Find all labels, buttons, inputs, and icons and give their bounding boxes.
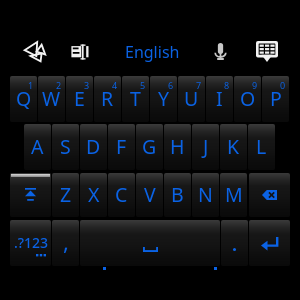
button[interactable]: B xyxy=(164,173,191,217)
staticText: 8 xyxy=(224,79,230,91)
button[interactable]: A xyxy=(24,124,51,170)
staticText: , xyxy=(63,226,69,256)
staticText: 1 xyxy=(28,79,34,91)
button[interactable]: E xyxy=(66,76,93,122)
button[interactable] xyxy=(221,220,248,266)
button[interactable]: W xyxy=(38,76,65,122)
staticText: Y xyxy=(158,85,170,112)
staticText: 3 xyxy=(84,79,90,91)
button[interactable]: C xyxy=(108,173,135,217)
staticText: L xyxy=(256,133,267,160)
staticText: 0 xyxy=(280,79,286,91)
button[interactable]: F xyxy=(108,124,135,170)
button[interactable]: I xyxy=(206,76,233,122)
staticText: O xyxy=(240,85,256,112)
staticText: 9 xyxy=(252,79,258,91)
button[interactable]: D xyxy=(80,124,107,170)
staticText: 6 xyxy=(168,79,174,91)
button[interactable]: J xyxy=(192,124,219,170)
staticText: H xyxy=(170,133,185,160)
staticText: X xyxy=(88,181,100,208)
staticText: V xyxy=(144,181,156,208)
button[interactable]: L xyxy=(248,124,275,170)
button[interactable]: , xyxy=(52,220,79,266)
button[interactable]: N xyxy=(192,173,219,217)
staticText: A xyxy=(31,133,44,160)
button[interactable] xyxy=(249,220,290,266)
staticText: U xyxy=(184,85,199,112)
button[interactable]: Q xyxy=(10,76,37,122)
staticText: B xyxy=(171,181,184,208)
button[interactable]: .?123 xyxy=(10,220,51,266)
button[interactable]: Voice input xyxy=(198,30,242,72)
button[interactable]: Sound off xyxy=(11,30,61,72)
staticText: W xyxy=(42,85,61,112)
staticText: C xyxy=(115,181,128,208)
staticText: D xyxy=(86,133,101,160)
staticText: Z xyxy=(60,181,72,208)
staticText: T xyxy=(130,85,141,112)
staticText: K xyxy=(227,133,240,160)
staticText: F xyxy=(116,133,127,160)
staticText: M xyxy=(225,181,243,208)
button[interactable]: Y xyxy=(150,76,177,122)
staticText: S xyxy=(60,133,71,160)
button[interactable]: V xyxy=(136,173,163,217)
button[interactable]: T xyxy=(122,76,149,122)
button[interactable]: G xyxy=(136,124,163,170)
button[interactable] xyxy=(249,173,290,217)
button[interactable]: Keyboard mode xyxy=(58,31,101,73)
button[interactable]: P xyxy=(262,76,289,122)
staticText: J xyxy=(203,133,209,160)
button[interactable]: H xyxy=(164,124,191,170)
button[interactable]: O xyxy=(234,76,261,122)
staticText: P xyxy=(270,85,282,112)
staticText: 7 xyxy=(196,79,202,91)
button[interactable]: U xyxy=(178,76,205,122)
staticText: R xyxy=(101,85,114,112)
staticText: English xyxy=(125,41,180,63)
button[interactable]: K xyxy=(220,124,247,170)
button[interactable]: Hide keyboard xyxy=(244,30,290,72)
staticText: I xyxy=(216,85,223,112)
button[interactable]: M xyxy=(220,173,247,217)
staticText: G xyxy=(142,133,157,160)
staticText: E xyxy=(74,85,85,112)
button[interactable]: S xyxy=(52,124,79,170)
button[interactable]: X xyxy=(80,173,107,217)
button[interactable]: Z xyxy=(52,173,79,217)
button[interactable]: English xyxy=(112,30,190,72)
button[interactable] xyxy=(80,220,220,266)
staticText: Q xyxy=(16,85,32,112)
staticText: 2 xyxy=(56,79,62,91)
button[interactable]: R xyxy=(94,76,121,122)
staticText: 5 xyxy=(140,79,146,91)
staticText: N xyxy=(198,181,213,208)
staticText: 4 xyxy=(112,79,118,91)
button[interactable] xyxy=(10,173,51,217)
staticText: .?123 xyxy=(14,233,49,252)
